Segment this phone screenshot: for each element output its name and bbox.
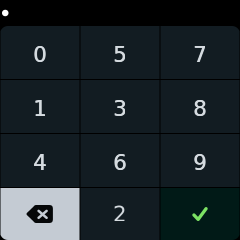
button[interactable]: 0 xyxy=(0,26,79,79)
button[interactable]: 3 xyxy=(80,80,159,133)
staticText: 6 xyxy=(113,150,127,175)
staticText: 7 xyxy=(193,42,207,67)
staticText: 3 xyxy=(113,96,127,121)
staticText: 8 xyxy=(193,96,207,121)
staticText: 8 xyxy=(193,96,207,121)
button[interactable]: 9 xyxy=(160,134,239,187)
staticText: 1 xyxy=(33,96,47,121)
staticText: 2 xyxy=(113,202,127,226)
button[interactable]: 1 xyxy=(0,80,79,133)
button[interactable]: 7 xyxy=(160,26,239,79)
staticText: 5 xyxy=(113,42,127,67)
staticText: 5 xyxy=(113,42,127,67)
button[interactable]: 5 xyxy=(80,26,159,79)
button[interactable]: Delete xyxy=(0,188,79,240)
staticText: 3 xyxy=(113,96,127,121)
staticText: 9 xyxy=(193,150,207,175)
button[interactable]: 4 xyxy=(0,134,79,187)
staticText: 7 xyxy=(193,42,207,67)
staticText: 1 xyxy=(33,96,47,121)
button[interactable]: 8 xyxy=(160,80,239,133)
button[interactable]: 6 xyxy=(80,134,159,187)
staticText: 0 xyxy=(33,42,47,67)
staticText: 4 xyxy=(33,150,47,175)
button[interactable]: Confirm xyxy=(160,188,239,240)
staticText: 4 xyxy=(33,150,47,175)
staticText: 0 xyxy=(33,42,47,67)
button[interactable]: 2 xyxy=(80,188,159,240)
staticText: 6 xyxy=(113,150,127,175)
staticText: 9 xyxy=(193,150,207,175)
